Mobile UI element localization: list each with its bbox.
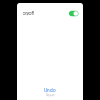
- staticText: Reset: [45, 93, 54, 97]
- button[interactable]: On/Off: [17, 3, 83, 24]
- staticText: On/Off: [22, 11, 33, 16]
- button[interactable]: Undo: [44, 88, 56, 93]
- button[interactable]: On/Off: [69, 11, 78, 16]
- staticText: Undo: [44, 88, 56, 93]
